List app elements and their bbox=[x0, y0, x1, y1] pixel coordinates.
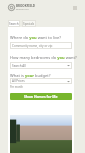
staticText: Where do you want to live? bbox=[10, 35, 61, 40]
button[interactable]: Community name, city or zip bbox=[10, 42, 72, 49]
button[interactable]: Search bbox=[8, 20, 20, 27]
button[interactable]: All Prices bbox=[10, 78, 72, 84]
staticText: Community name, city or zip bbox=[12, 44, 53, 48]
staticText: Show Homes for Me bbox=[24, 94, 58, 99]
staticText: How many bedrooms do you want? bbox=[10, 55, 77, 60]
staticText: Specials bbox=[23, 22, 35, 26]
staticText: RESIDENTIAL bbox=[16, 8, 29, 11]
staticText: BROOKFIELD bbox=[16, 4, 36, 8]
staticText: Search bbox=[9, 22, 19, 26]
button[interactable]: Show Homes for Me bbox=[10, 93, 72, 100]
staticText: Search All bbox=[12, 64, 26, 68]
staticText: All Prices bbox=[12, 79, 25, 83]
staticText: What is your budget? bbox=[10, 73, 51, 78]
button[interactable]: Specials bbox=[22, 20, 36, 27]
button[interactable]: Search All bbox=[10, 62, 72, 69]
staticText: Per month bbox=[10, 85, 23, 89]
